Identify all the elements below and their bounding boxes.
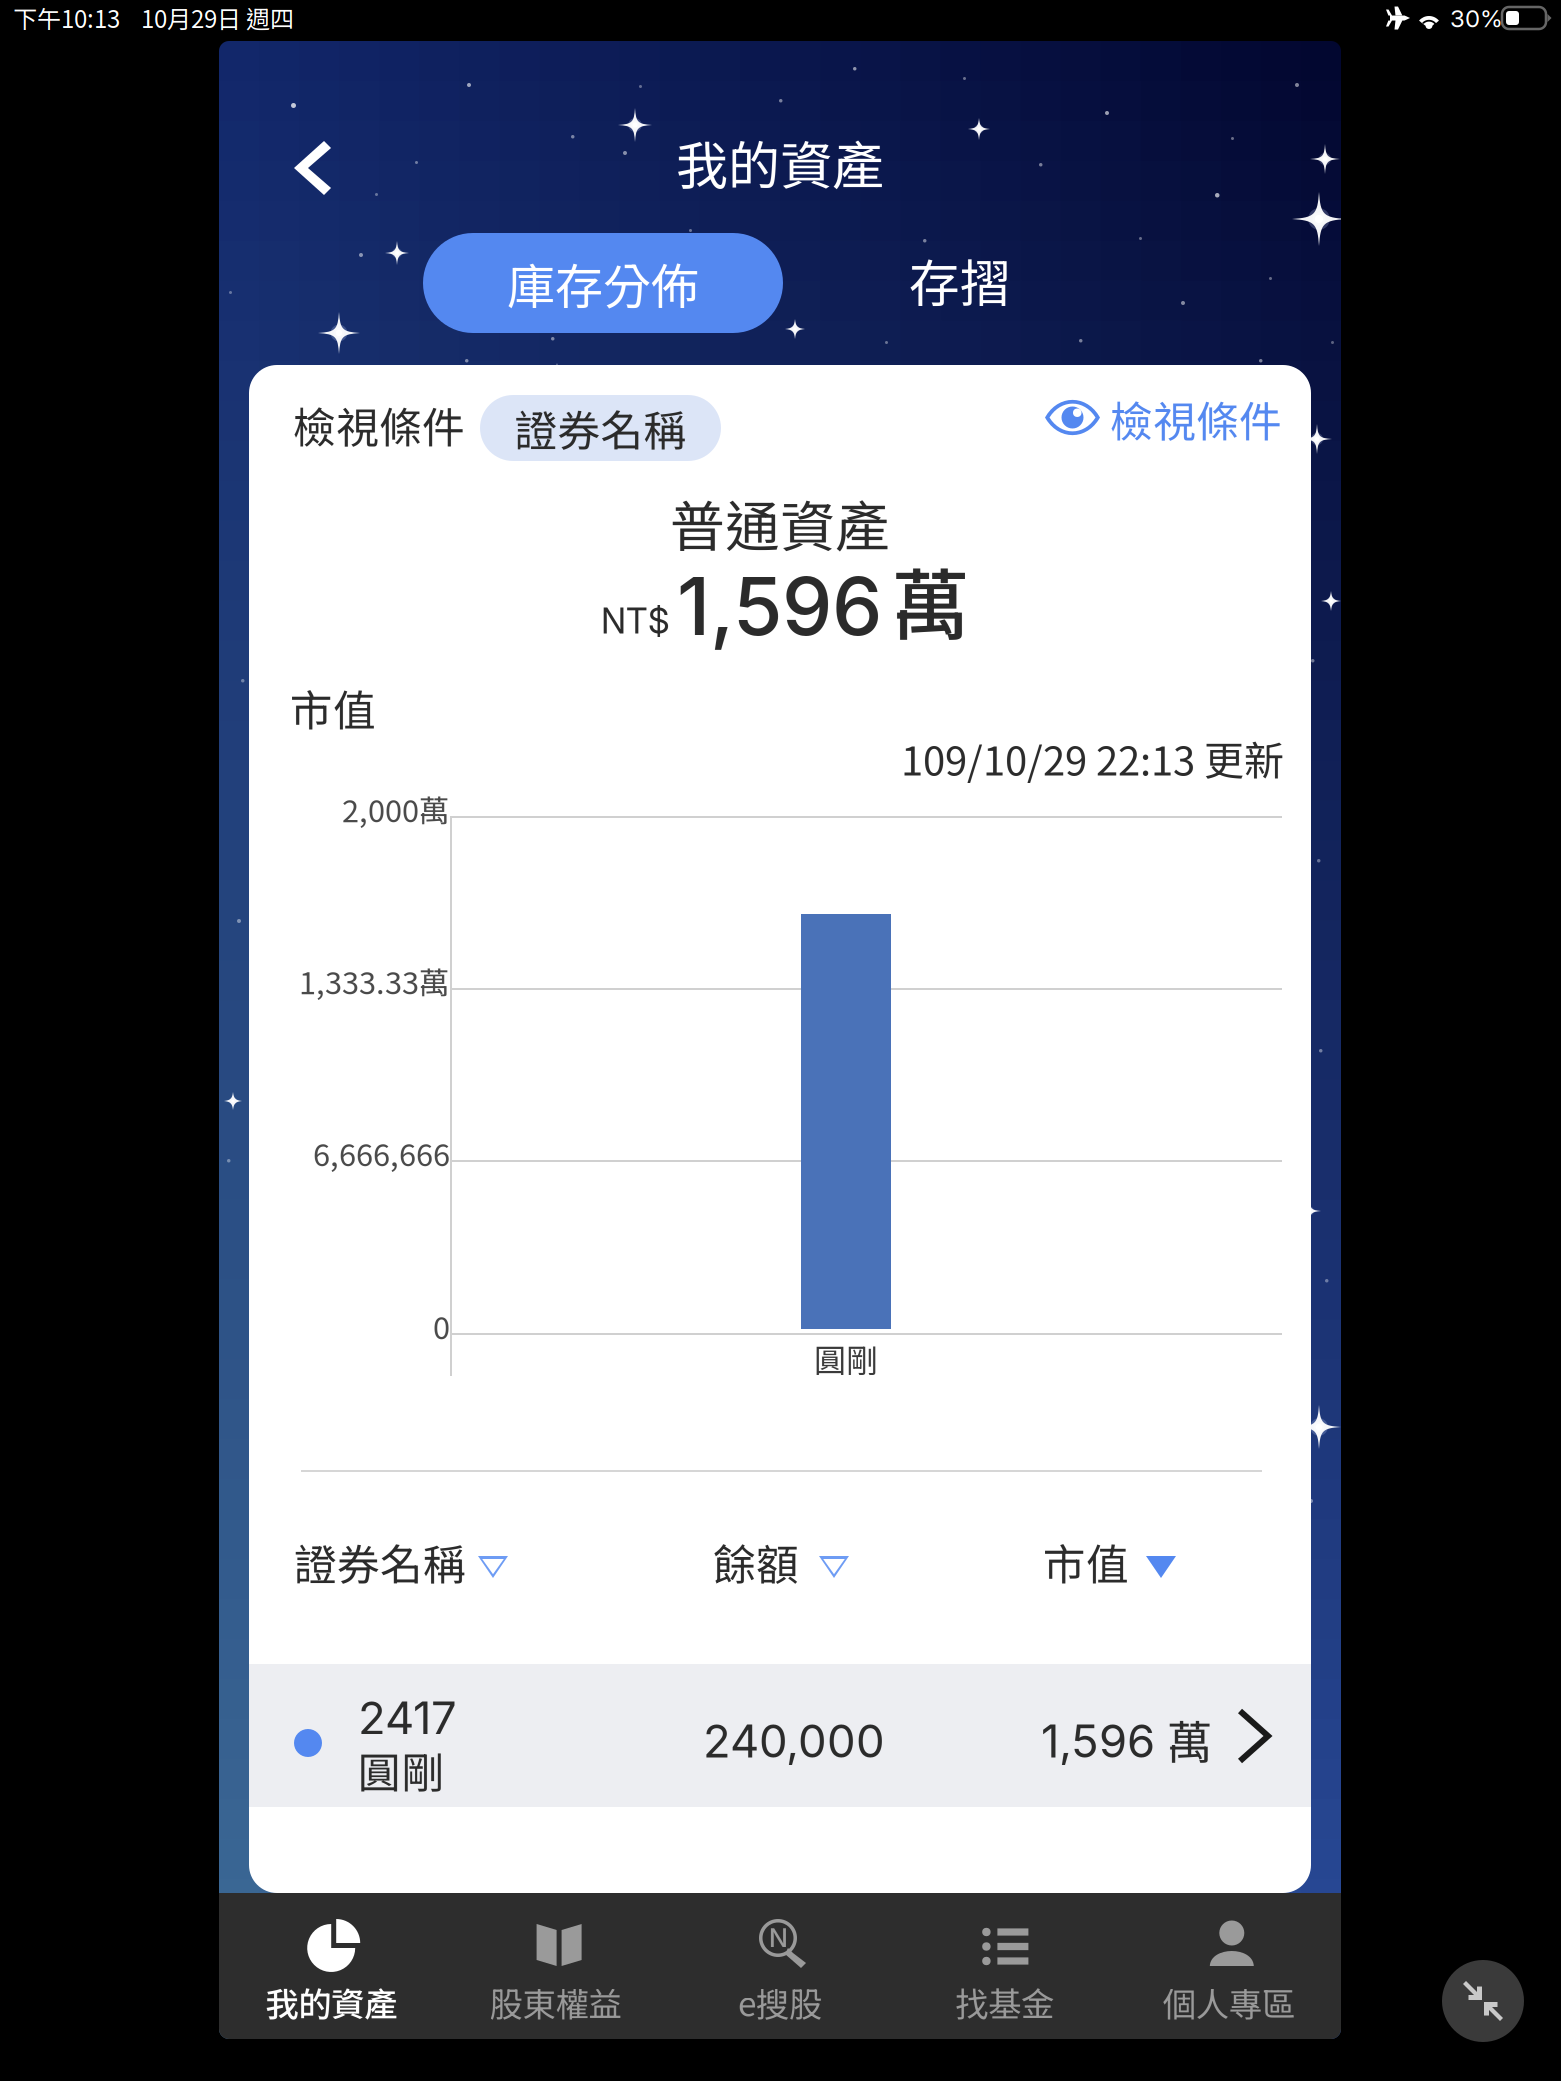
staticText: 市值	[1043, 1531, 1129, 1593]
button[interactable]: 個人專區	[1117, 1893, 1341, 2039]
staticText: 1,596	[677, 558, 882, 654]
staticText: 檢視條件	[293, 394, 465, 456]
button[interactable]: 我的資產	[219, 1893, 443, 2039]
staticText: 存摺	[909, 243, 1011, 317]
staticText: 萬	[1167, 1706, 1212, 1772]
button[interactable]: 證券名稱	[480, 395, 721, 461]
staticText: 證券名稱	[294, 1531, 466, 1593]
staticText: 10月29日 週四	[141, 0, 294, 35]
staticText: 圓剛	[814, 1335, 878, 1381]
staticText: 我的資產	[676, 124, 884, 200]
button[interactable]: 庫存分佈	[423, 233, 783, 333]
staticText: 0	[433, 1304, 450, 1348]
staticText: 我的資產	[265, 1978, 397, 2026]
staticText: 240,000	[703, 1714, 885, 1768]
staticText: 6,666,666	[313, 1131, 450, 1175]
staticText: e搜股	[738, 1978, 822, 2026]
button[interactable]: 檢視條件	[1039, 381, 1287, 455]
button[interactable]: 股東權益	[443, 1893, 668, 2039]
staticText: 109/10/29 22:13 更新	[901, 729, 1284, 787]
staticText: 市值	[290, 677, 376, 739]
staticText: 2,000萬	[342, 787, 450, 831]
button[interactable]: 2417	[249, 1664, 1311, 1807]
button[interactable]: 縮小視窗	[1442, 1960, 1524, 2042]
staticText: 2417	[358, 1691, 457, 1745]
staticText: 找基金	[955, 1978, 1054, 2026]
staticText: 餘額	[713, 1531, 799, 1593]
staticText: 庫存分佈	[507, 248, 699, 318]
staticText: 30%	[1450, 4, 1503, 33]
staticText: 1,596	[1041, 1714, 1155, 1768]
staticText: NT$	[601, 600, 670, 642]
button[interactable]: 找基金	[892, 1893, 1117, 2039]
staticText: N	[769, 1923, 788, 1953]
button[interactable]: N	[668, 1893, 892, 2039]
staticText: 個人專區	[1163, 1978, 1295, 2026]
staticText: 普通資產	[670, 483, 890, 563]
button[interactable]: 存摺	[870, 230, 1050, 330]
staticText: 下午10:13	[13, 0, 120, 35]
staticText: 1,333.33萬	[299, 959, 450, 1003]
staticText: 圓剛	[358, 1739, 444, 1801]
staticText: 證券名稱	[514, 397, 686, 459]
staticText: 股東權益	[490, 1978, 622, 2026]
button[interactable]: 返回	[265, 127, 385, 209]
staticText: 檢視條件	[1110, 388, 1282, 450]
staticText: 萬	[892, 544, 969, 656]
